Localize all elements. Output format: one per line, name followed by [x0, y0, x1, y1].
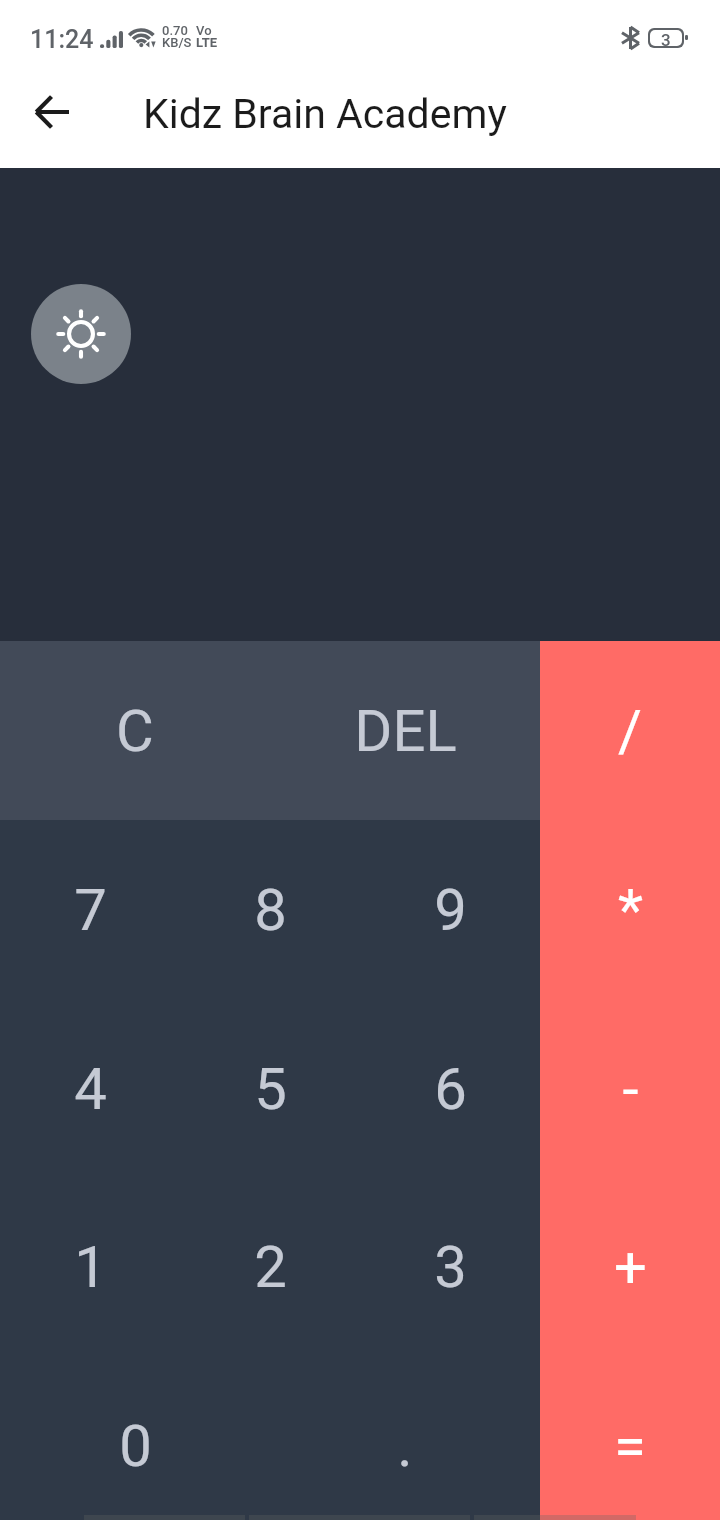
staticText: 3 [434, 1233, 467, 1301]
staticText: KB/S [162, 35, 192, 50]
button[interactable]: 7 [0, 820, 180, 999]
staticText: 9 [434, 876, 467, 944]
button[interactable]: DEL [270, 641, 540, 820]
staticText: * [618, 876, 643, 944]
staticText: Kidz Brain Academy [143, 90, 507, 138]
button[interactable]: 3 [360, 1177, 540, 1356]
button[interactable]: / [540, 641, 720, 820]
staticText: 7 [74, 876, 107, 944]
button[interactable]: * [540, 820, 720, 999]
staticText: 2 [254, 1233, 287, 1301]
button[interactable]: C [0, 641, 270, 820]
staticText: / [618, 697, 642, 765]
button[interactable]: 4 [0, 999, 180, 1178]
button[interactable]: . [270, 1356, 540, 1520]
button[interactable]: 0 [0, 1356, 270, 1520]
staticText: . [397, 1412, 413, 1480]
staticText: LTE [196, 35, 218, 50]
staticText: 5 [254, 1055, 287, 1123]
staticText: + [614, 1233, 647, 1301]
staticText: 0.70 [162, 23, 188, 38]
button[interactable]: 8 [180, 820, 360, 999]
staticText: 0 [119, 1412, 152, 1480]
button[interactable]: Back [16, 76, 88, 148]
button[interactable]: = [540, 1356, 720, 1520]
button[interactable]: 9 [360, 820, 540, 999]
staticText: C [116, 697, 154, 765]
staticText: 3 [661, 30, 671, 46]
button[interactable]: 1 [0, 1177, 180, 1356]
staticText: 1 [74, 1233, 107, 1301]
button[interactable]: Toggle light theme [31, 284, 131, 384]
staticText: = [614, 1412, 646, 1480]
button[interactable]: - [540, 999, 720, 1178]
staticText: 4 [74, 1055, 107, 1123]
staticText: 11:24 [30, 25, 94, 54]
staticText: 6 [434, 1055, 467, 1123]
button[interactable]: 2 [180, 1177, 360, 1356]
staticText: - [622, 1055, 639, 1123]
button[interactable]: + [540, 1177, 720, 1356]
staticText: 8 [254, 876, 287, 944]
button[interactable]: 6 [360, 999, 540, 1178]
button[interactable]: 5 [180, 999, 360, 1178]
staticText: Vo [196, 23, 212, 38]
staticText: DEL [354, 697, 457, 765]
